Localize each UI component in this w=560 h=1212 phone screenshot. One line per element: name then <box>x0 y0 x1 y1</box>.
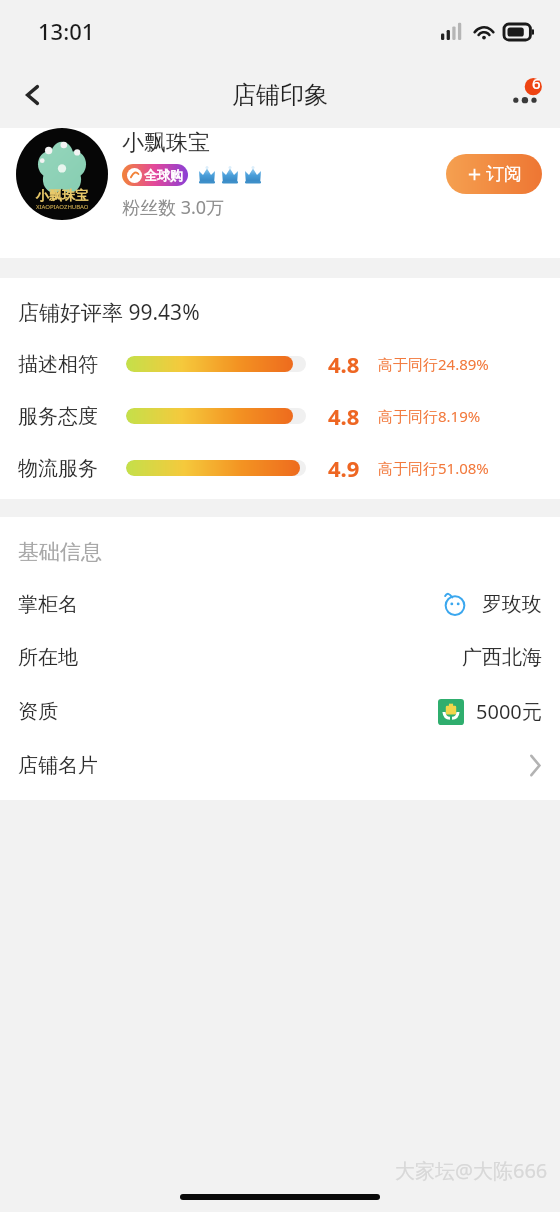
staticText: 服务态度 <box>18 404 110 429</box>
staticText: 大家坛@大陈666 <box>395 1157 548 1184</box>
staticText: 所在地 <box>18 645 462 670</box>
button[interactable]: 掌柜名 <box>18 591 542 617</box>
staticText: 5000元 <box>476 698 542 725</box>
staticText: XIAOPIAOZHUBAO <box>36 203 89 211</box>
staticText: 店铺名片 <box>18 753 529 778</box>
button[interactable]: 店铺名片 <box>18 753 542 778</box>
button[interactable]: More options <box>494 62 560 128</box>
staticText: 粉丝数 3.0万 <box>122 195 225 220</box>
button[interactable]: 资质 <box>18 698 542 725</box>
staticText: 店铺印象 <box>232 80 328 110</box>
staticText: 掌柜名 <box>18 592 442 617</box>
staticText: 物流服务 <box>18 456 110 481</box>
staticText: 高于同行51.08% <box>378 458 489 478</box>
staticText: 基础信息 <box>18 539 102 565</box>
staticText: 描述相符 <box>18 352 110 377</box>
staticText: 广西北海 <box>462 645 542 670</box>
staticText: 13:01 <box>38 16 95 46</box>
staticText: 全球购 <box>144 167 183 183</box>
button[interactable]: Back <box>6 68 60 122</box>
staticText: 4.8 <box>328 401 372 431</box>
staticText: 4.8 <box>328 349 372 379</box>
staticText: 小飘珠宝 <box>36 187 88 203</box>
staticText: 小飘珠宝 <box>122 129 210 157</box>
button[interactable]: 所在地 <box>18 645 542 670</box>
staticText: 4.9 <box>328 453 372 483</box>
staticText: 罗玫玫 <box>482 592 542 617</box>
button[interactable]: 订阅 <box>446 154 542 194</box>
staticText: 店铺好评率 99.43% <box>18 298 200 327</box>
staticText: 高于同行8.19% <box>378 406 481 426</box>
staticText: 高于同行24.89% <box>378 354 489 374</box>
staticText: 资质 <box>18 699 438 724</box>
staticText: 6 <box>532 73 541 93</box>
staticText: 订阅 <box>486 163 522 186</box>
